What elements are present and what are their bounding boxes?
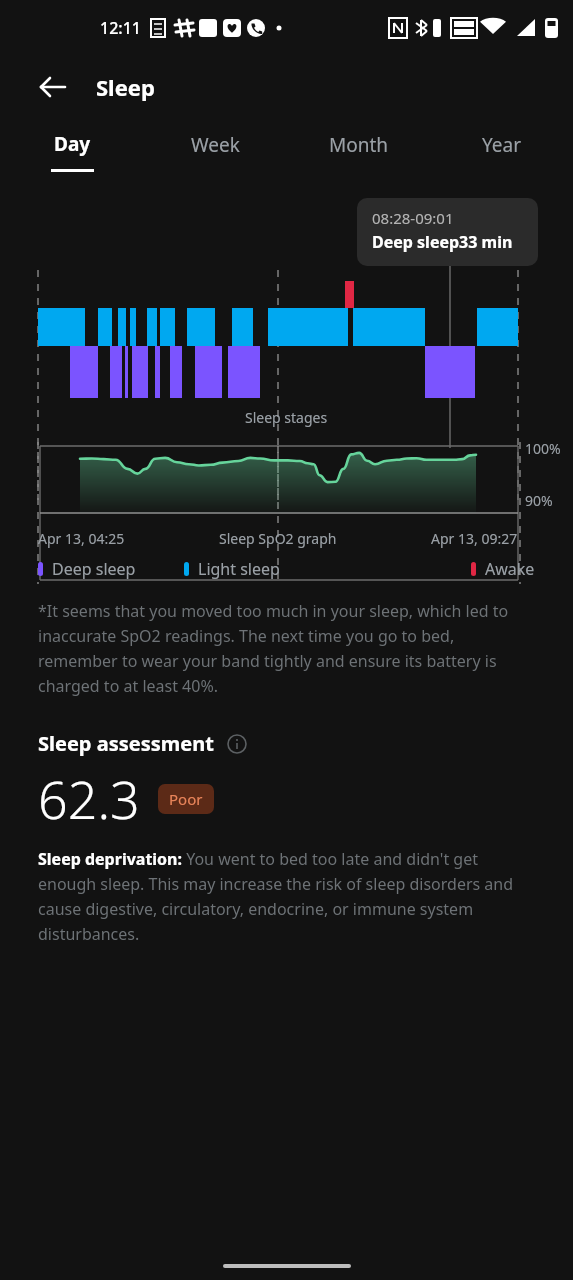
staticText: 08:28-09:01 [372, 208, 454, 228]
button[interactable]: Poor [169, 789, 203, 809]
button[interactable]: Month [287, 118, 430, 184]
staticText: Sleep [96, 72, 155, 102]
button[interactable]: Week [144, 118, 287, 184]
button[interactable]: Info [224, 731, 250, 757]
staticText: Week [191, 132, 240, 158]
staticText: Sleep SpO2 graph [219, 529, 337, 548]
staticText: 62.3 [38, 763, 140, 834]
button[interactable]: Year [430, 118, 573, 184]
staticText: Day [54, 131, 91, 157]
staticText: Sleep deprivation: You went to bed too l… [38, 848, 535, 944]
staticText: Month [329, 132, 389, 158]
staticText: Deep sleep33 min [372, 231, 513, 253]
staticText: Year [482, 132, 522, 158]
staticText: Apr 13, 09:27 [431, 529, 518, 548]
button[interactable]: Back [30, 65, 74, 109]
staticText: 90% [525, 491, 553, 510]
staticText: Sleep assessment [38, 730, 214, 757]
staticText: *It seems that you moved too much in you… [38, 600, 535, 696]
button[interactable]: 08:28-09:01 [357, 198, 538, 266]
staticText: Deep sleep [52, 558, 136, 580]
staticText: 12:11 [100, 17, 141, 39]
staticText: Light sleep [198, 558, 280, 580]
staticText: Poor [169, 789, 203, 809]
staticText: Apr 13, 04:25 [38, 529, 125, 548]
staticText: Awake [485, 558, 535, 580]
staticText: 100% [525, 439, 561, 458]
button[interactable]: Day [0, 118, 144, 184]
staticText: Sleep stages [245, 408, 328, 427]
